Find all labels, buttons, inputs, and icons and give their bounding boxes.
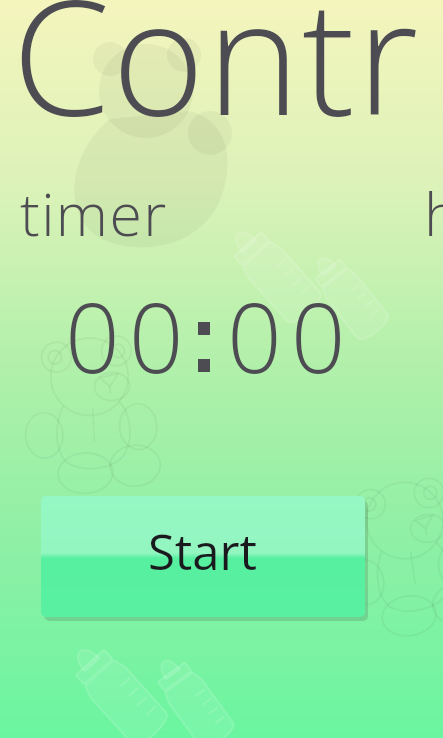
staticText: 00: [227, 270, 355, 401]
staticText: timer: [20, 173, 168, 253]
staticText: history: [424, 173, 443, 253]
staticText: Start: [148, 518, 258, 585]
staticText: 00: [65, 270, 193, 401]
button[interactable]: Start: [41, 496, 365, 617]
staticText: Contractions: [12, 0, 443, 161]
